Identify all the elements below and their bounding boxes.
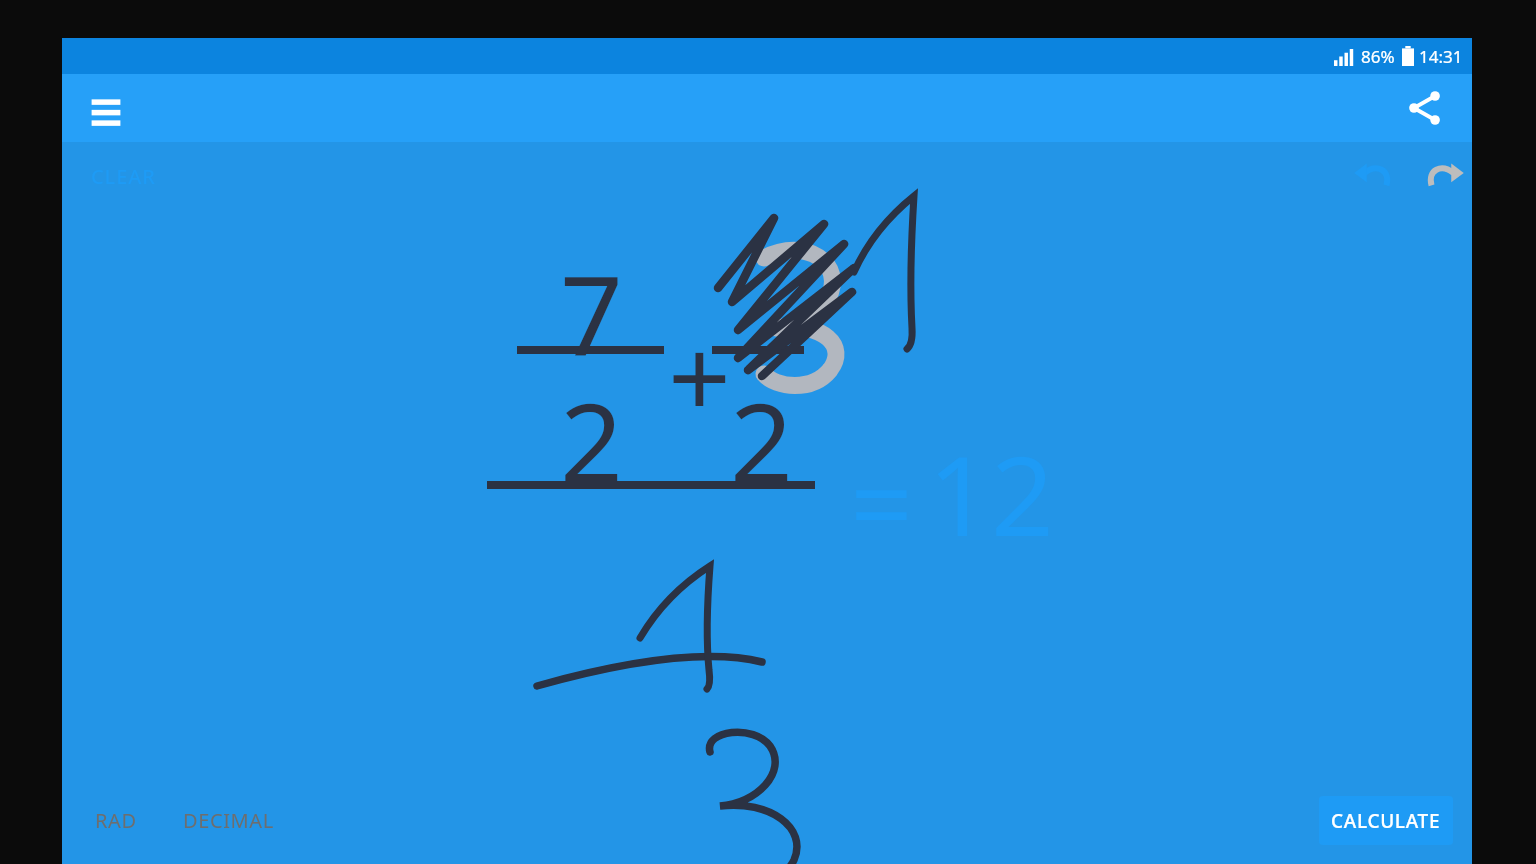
staticText: 14:31 — [1419, 45, 1463, 68]
staticText: 86% — [1361, 45, 1395, 68]
staticText: 2 — [730, 365, 793, 515]
button[interactable]: Share — [1401, 84, 1449, 132]
button[interactable]: DECIMAL — [162, 796, 294, 844]
button[interactable]: CALCULATE — [1319, 796, 1453, 845]
button[interactable]: Redo — [1418, 150, 1470, 202]
staticText: CALCULATE — [1331, 808, 1441, 834]
staticText: + — [668, 300, 731, 450]
staticText: RAD — [95, 807, 137, 834]
button[interactable]: Menu — [82, 84, 130, 132]
button[interactable]: RAD — [76, 796, 156, 844]
button[interactable]: CLEAR — [84, 155, 162, 197]
staticText: 2 — [560, 365, 623, 515]
staticText: DECIMAL — [183, 807, 274, 834]
staticText: 7 — [560, 238, 623, 388]
staticText: CLEAR — [91, 163, 156, 190]
button[interactable]: Undo — [1348, 150, 1400, 202]
staticText: = — [850, 426, 913, 576]
staticText: 12 — [928, 418, 1054, 568]
